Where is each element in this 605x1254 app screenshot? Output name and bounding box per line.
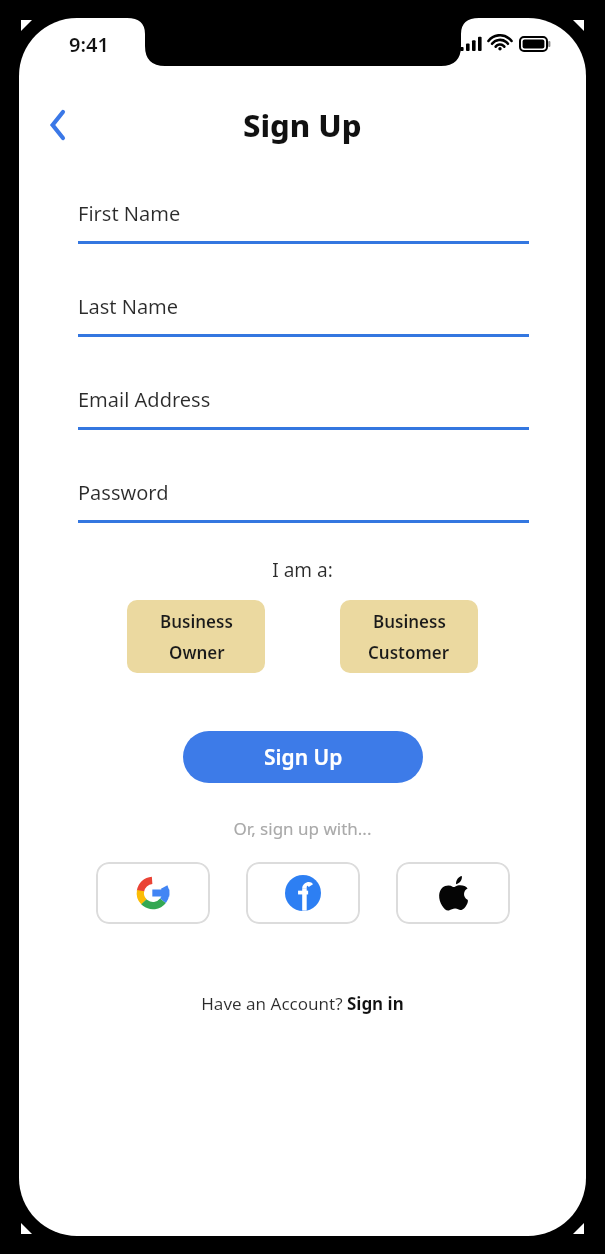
- staticText: I am a:: [19, 557, 586, 583]
- button[interactable]: Sign Up: [183, 731, 423, 783]
- staticText: Have an Account? Sign in: [201, 992, 404, 1015]
- button[interactable]: Sign up with Google: [96, 862, 210, 924]
- button[interactable]: Business: [127, 600, 265, 673]
- staticText: Email Address: [78, 386, 211, 413]
- button[interactable]: Email Address: [78, 386, 529, 430]
- button[interactable]: First Name: [78, 200, 529, 244]
- staticText: 9:41: [69, 31, 109, 58]
- staticText: Owner: [169, 641, 225, 664]
- button[interactable]: Last Name: [78, 293, 529, 337]
- staticText: Sign Up: [243, 104, 362, 146]
- button[interactable]: Back: [33, 101, 81, 149]
- staticText: Customer: [368, 641, 450, 664]
- staticText: Business: [373, 610, 446, 633]
- button[interactable]: Business: [340, 600, 478, 673]
- staticText: Business: [160, 610, 233, 633]
- staticText: Or, sign up with...: [19, 817, 586, 840]
- staticText: Sign Up: [264, 743, 343, 772]
- staticText: First Name: [78, 200, 181, 227]
- button[interactable]: Sign up with Apple: [396, 862, 510, 924]
- button[interactable]: Have an Account? Sign in: [19, 992, 586, 1015]
- button[interactable]: Password: [78, 479, 529, 523]
- button[interactable]: Sign up with Facebook: [246, 862, 360, 924]
- staticText: Password: [78, 479, 169, 506]
- staticText: Last Name: [78, 293, 179, 320]
